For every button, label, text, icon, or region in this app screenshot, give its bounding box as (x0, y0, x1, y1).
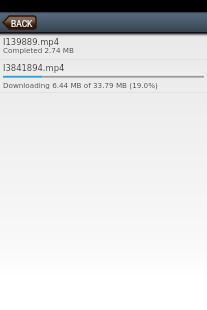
staticText: I3841894.mp4 (3, 63, 65, 73)
staticText: I139889.mp4 (3, 37, 60, 47)
button[interactable]: I139889.mp4 (0, 33, 207, 59)
staticText: Downloading 6.44 MB of 33.79 MB (19.0%) (3, 81, 158, 89)
staticText: BACK (11, 19, 33, 29)
staticText: Completed 2.74 MB (3, 46, 74, 54)
button[interactable]: I3841894.mp4 (0, 60, 207, 92)
button[interactable]: Back (3, 16, 36, 29)
